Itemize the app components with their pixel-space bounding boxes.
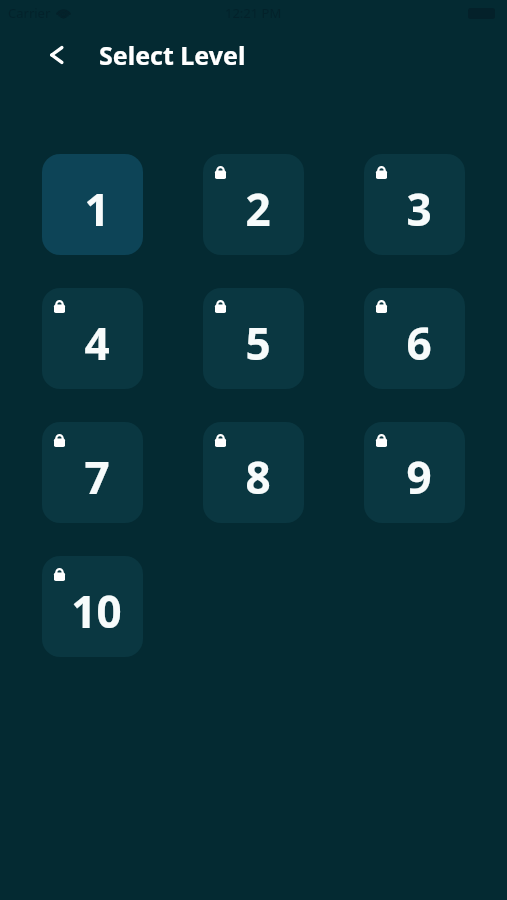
button[interactable]: 3 xyxy=(364,154,465,255)
staticText: 5 xyxy=(245,313,271,373)
staticText: 4 xyxy=(84,313,110,373)
button[interactable]: 4 xyxy=(42,288,143,389)
button[interactable]: Back xyxy=(36,34,78,76)
staticText: 8 xyxy=(245,447,271,507)
button[interactable]: 10 xyxy=(42,556,143,657)
staticText: Select Level xyxy=(99,38,246,72)
staticText: 9 xyxy=(406,447,432,507)
button[interactable]: 2 xyxy=(203,154,304,255)
staticText: 7 xyxy=(84,447,110,507)
button[interactable]: 1 xyxy=(42,154,143,255)
button[interactable]: 5 xyxy=(203,288,304,389)
staticText: 10 xyxy=(71,581,122,641)
staticText: 3 xyxy=(406,179,432,239)
staticText: 6 xyxy=(406,313,432,373)
button[interactable]: 6 xyxy=(364,288,465,389)
staticText: 1 xyxy=(84,179,110,239)
button[interactable]: 9 xyxy=(364,422,465,523)
button[interactable]: 7 xyxy=(42,422,143,523)
staticText: 2 xyxy=(245,179,271,239)
button[interactable]: 8 xyxy=(203,422,304,523)
